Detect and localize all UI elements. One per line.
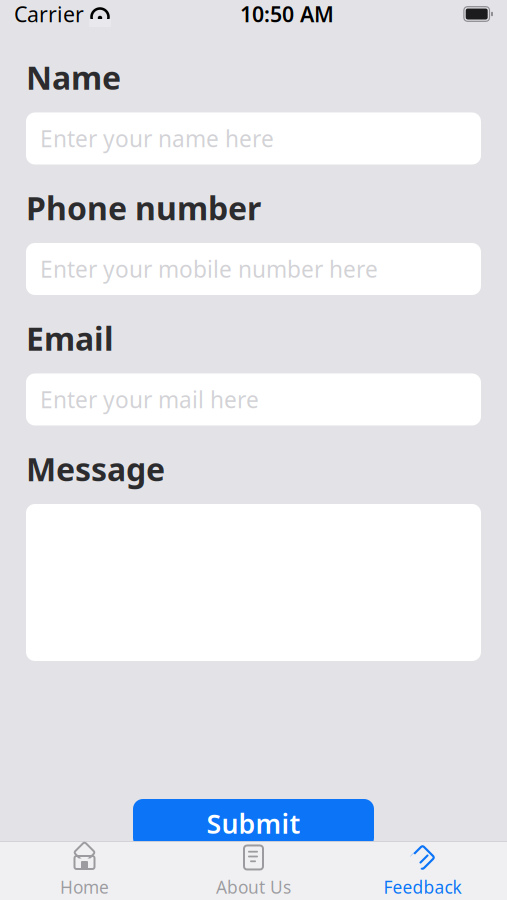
staticText: Enter your name here <box>40 123 274 153</box>
staticText: Email <box>26 317 114 359</box>
staticText: Home <box>60 875 109 898</box>
staticText: Name <box>26 56 121 98</box>
button[interactable]: Enter your name here <box>26 112 481 164</box>
staticText: Feedback <box>383 875 461 898</box>
button[interactable]: Submit <box>133 799 374 848</box>
staticText: About Us <box>216 875 291 898</box>
staticText: Enter your mobile number here <box>40 254 378 284</box>
staticText: Enter your mail here <box>40 384 259 414</box>
staticText: Message <box>26 447 165 490</box>
staticText: Submit <box>206 806 300 841</box>
staticText: Carrier <box>14 0 84 28</box>
button[interactable]: Enter your mail here <box>26 373 481 425</box>
button[interactable]: Feedback <box>338 842 507 900</box>
button[interactable]: Enter your mobile number here <box>26 243 481 295</box>
staticText: 10:50 AM <box>240 0 334 28</box>
button[interactable]: About Us <box>169 842 338 900</box>
button[interactable]: Home <box>0 842 169 900</box>
staticText: Phone number <box>26 186 261 229</box>
